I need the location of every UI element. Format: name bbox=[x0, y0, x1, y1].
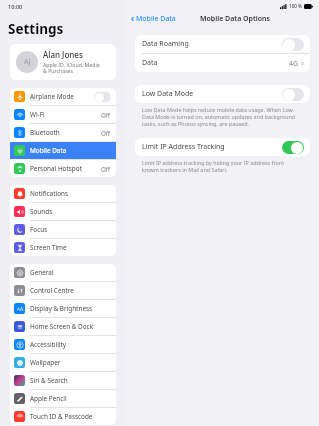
staticText: Low Data Mode bbox=[142, 89, 282, 99]
button[interactable]: Apple Pencil bbox=[10, 390, 116, 407]
staticText: Sounds bbox=[30, 207, 111, 216]
staticText: Off bbox=[101, 111, 111, 119]
button[interactable]: Wi-Fi bbox=[10, 106, 116, 123]
staticText: Mobile Data Options bbox=[200, 14, 271, 24]
staticText: Accessibility bbox=[30, 340, 111, 349]
button[interactable]: Sounds bbox=[10, 203, 116, 220]
staticText: Touch ID & Passcode bbox=[30, 412, 111, 421]
staticText: 4G bbox=[289, 59, 298, 68]
staticText: 100 % bbox=[289, 3, 302, 9]
staticText: Data Roaming bbox=[142, 39, 282, 49]
button[interactable]: Touch ID & Passcode bbox=[10, 408, 116, 425]
staticText: Limit IP address tracking by hiding your… bbox=[142, 159, 302, 173]
button[interactable]: Wallpaper bbox=[10, 354, 116, 371]
staticText: Display & Brightness bbox=[30, 304, 111, 313]
button[interactable]: Display & Brightness bbox=[10, 300, 116, 317]
button[interactable]: General bbox=[10, 264, 116, 281]
staticText: AJ bbox=[24, 57, 31, 67]
button[interactable]: Airplane Mode bbox=[10, 88, 116, 105]
staticText: Off bbox=[101, 129, 111, 137]
button[interactable]: Focus bbox=[10, 221, 116, 238]
button[interactable]: On bbox=[282, 141, 304, 154]
staticText: Wi-Fi bbox=[30, 110, 101, 119]
staticText: Low Data Mode helps reduce mobile data u… bbox=[142, 106, 302, 127]
staticText: Bluetooth bbox=[30, 128, 101, 137]
button[interactable]: Notifications bbox=[10, 185, 116, 202]
button[interactable]: Personal Hotspot bbox=[10, 160, 116, 177]
button[interactable]: Accessibility bbox=[10, 336, 116, 353]
button[interactable]: AJ bbox=[10, 44, 116, 80]
button[interactable]: Bluetooth bbox=[10, 124, 116, 141]
staticText: Mobile Data bbox=[30, 146, 111, 155]
staticText: Notifications bbox=[30, 189, 111, 198]
staticText: Home Screen & Dock bbox=[30, 322, 111, 331]
staticText: Control Centre bbox=[30, 286, 111, 295]
staticText: Apple Pencil bbox=[30, 394, 111, 403]
button[interactable]: Low Data Mode bbox=[135, 85, 310, 103]
staticText: Alan Jones bbox=[43, 49, 83, 60]
button[interactable]: Off bbox=[282, 38, 304, 51]
button[interactable]: Siri & Search bbox=[10, 372, 116, 389]
button[interactable]: Mobile Data bbox=[129, 12, 178, 26]
staticText: Mobile Data bbox=[136, 14, 176, 24]
button[interactable]: Data bbox=[135, 54, 310, 72]
staticText: Personal Hotspot bbox=[30, 164, 101, 173]
button[interactable]: Off bbox=[94, 92, 111, 102]
staticText: Siri & Search bbox=[30, 376, 111, 385]
button[interactable]: Screen Time bbox=[10, 239, 116, 256]
staticText: Focus bbox=[30, 225, 111, 234]
button[interactable]: Home Screen & Dock bbox=[10, 318, 116, 335]
button[interactable]: Off bbox=[282, 88, 304, 101]
staticText: Airplane Mode bbox=[30, 92, 94, 101]
staticText: Wallpaper bbox=[30, 358, 111, 367]
staticText: Settings bbox=[8, 20, 64, 38]
staticText: 10:00 bbox=[8, 3, 23, 11]
staticText: Off bbox=[101, 165, 111, 173]
button[interactable]: Control Centre bbox=[10, 282, 116, 299]
staticText: Screen Time bbox=[30, 243, 111, 252]
button[interactable]: Data Roaming bbox=[135, 35, 310, 53]
staticText: General bbox=[30, 268, 111, 277]
button[interactable]: Mobile Data bbox=[10, 142, 116, 159]
staticText: Data bbox=[142, 58, 289, 68]
staticText: Apple ID, iCloud, Media & Purchases bbox=[43, 61, 100, 75]
button[interactable]: Limit IP Address Tracking bbox=[135, 138, 310, 156]
staticText: Limit IP Address Tracking bbox=[142, 142, 282, 152]
